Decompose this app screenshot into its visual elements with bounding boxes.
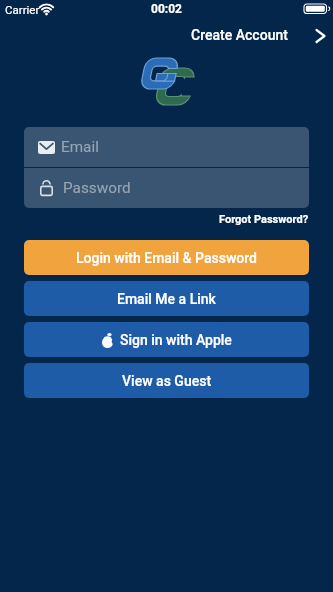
staticText: Create Account xyxy=(191,27,288,43)
button[interactable]: Login with Email & Password xyxy=(24,240,309,275)
staticText: Password xyxy=(63,179,131,197)
button[interactable]: Create Account xyxy=(188,24,333,46)
staticText: View as Guest xyxy=(122,373,212,389)
staticText: 00:02 xyxy=(151,2,182,16)
staticText: Sign in with Apple xyxy=(120,332,232,348)
staticText: Email Me a Link xyxy=(117,291,216,307)
button[interactable]: Password xyxy=(24,168,309,208)
button[interactable]: Sign in with Apple xyxy=(24,322,309,357)
staticText: Login with Email & Password xyxy=(76,250,258,266)
button[interactable]: View as Guest xyxy=(24,363,309,398)
staticText: Email xyxy=(61,138,99,156)
button[interactable]: Email Me a Link xyxy=(24,281,309,316)
staticText: Carrier xyxy=(5,3,40,16)
button[interactable]: Forgot Password? xyxy=(219,213,309,226)
button[interactable]: Email xyxy=(24,127,309,167)
